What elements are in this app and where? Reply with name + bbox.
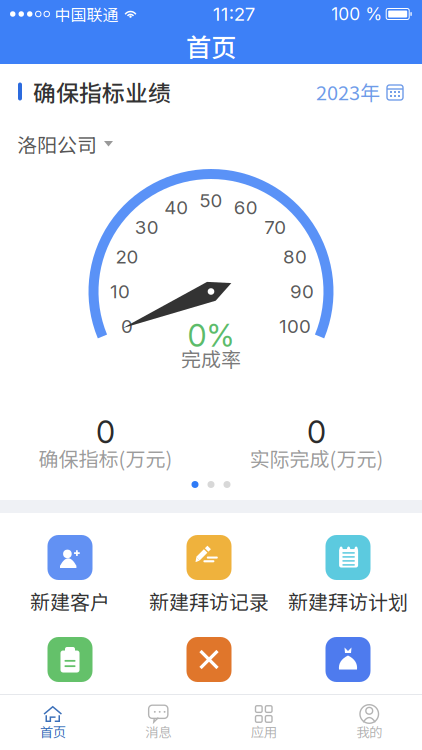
staticText: 90	[290, 280, 314, 303]
staticText: 40	[164, 196, 188, 219]
staticText: 确保指标业绩	[33, 75, 171, 108]
staticText: 0	[96, 413, 115, 450]
staticText: 100	[279, 315, 311, 338]
staticText: 洛阳公司	[17, 129, 97, 158]
staticText: 首页	[40, 722, 66, 741]
staticText: 首页	[186, 28, 236, 64]
staticText: 70	[264, 216, 286, 238]
staticText: 11:27	[213, 3, 256, 25]
button[interactable]: 消息	[105, 695, 211, 750]
staticText: 完成率	[181, 344, 241, 373]
staticText: 新建拜访记录	[149, 586, 269, 615]
button[interactable]: 新建拜访计划	[278, 535, 417, 637]
staticText: 60	[234, 196, 258, 219]
button[interactable]: 快捷入口	[278, 637, 417, 739]
button[interactable]: 我的	[316, 695, 422, 750]
staticText: 我的	[356, 722, 382, 741]
button[interactable]: 首页	[0, 695, 105, 750]
staticText: 新建拜访计划	[288, 586, 408, 615]
staticText: 0%	[187, 317, 234, 354]
staticText: 新建客户	[30, 586, 110, 615]
staticText: 30	[135, 216, 159, 238]
staticText: 实际完成(万元)	[249, 443, 383, 472]
staticText: 应用	[251, 722, 277, 741]
button[interactable]: 应用	[211, 695, 316, 750]
staticText: 10	[110, 280, 130, 303]
staticText: 中国联通	[54, 2, 118, 26]
staticText: 确保指标(万元)	[38, 443, 172, 472]
staticText: 100 %	[331, 3, 382, 24]
staticText: 80	[283, 245, 307, 268]
button[interactable]: 新建拜访记录	[139, 535, 278, 637]
staticText: 0	[121, 315, 133, 338]
staticText: 50	[199, 189, 222, 212]
staticText: 0	[307, 413, 326, 450]
button[interactable]: 洛阳公司	[17, 129, 113, 158]
staticText: 消息	[145, 722, 171, 741]
button[interactable]: 快捷入口	[0, 637, 139, 739]
button[interactable]: 新建客户	[0, 535, 139, 637]
staticText: 2023年	[316, 77, 380, 106]
button[interactable]: 快捷入口	[139, 637, 278, 739]
staticText: 20	[115, 245, 138, 268]
button[interactable]: 2023年	[316, 77, 404, 106]
